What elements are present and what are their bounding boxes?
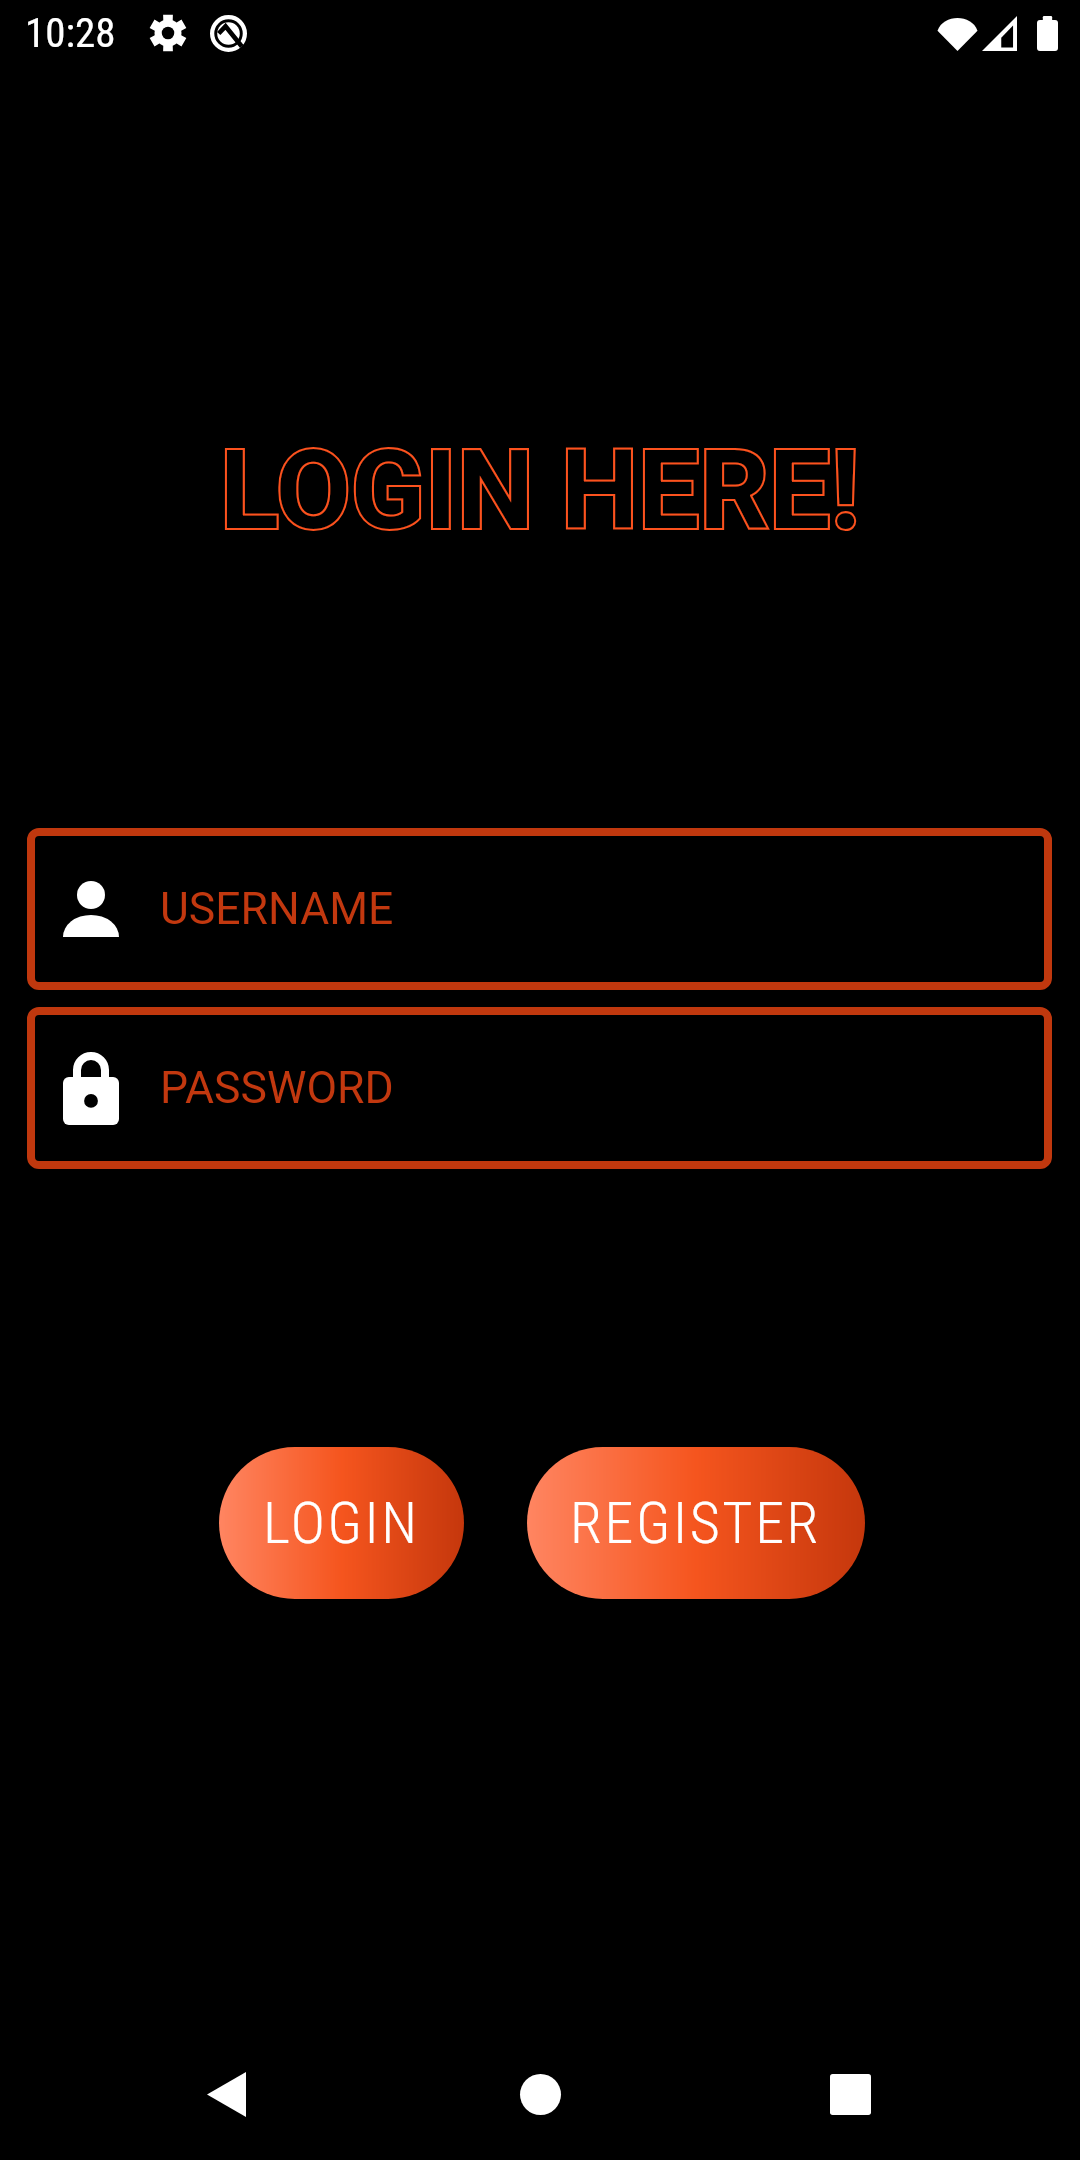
staticText: LOGIN — [263, 1489, 420, 1557]
button[interactable]: LOGIN — [219, 1447, 464, 1599]
staticText: LOGIN HERE! — [220, 427, 860, 555]
button[interactable]: REGISTER — [527, 1447, 865, 1599]
button[interactable]: Recent apps — [790, 2034, 910, 2154]
button[interactable]: PASSWORD — [27, 1007, 1052, 1169]
staticText: LOGIN HERE! — [220, 427, 860, 555]
staticText: USERNAME — [160, 883, 394, 935]
staticText: PASSWORD — [160, 1062, 394, 1114]
button[interactable]: Back — [166, 2034, 286, 2154]
staticText: REGISTER — [570, 1489, 822, 1557]
button[interactable]: USERNAME — [27, 828, 1052, 990]
button[interactable]: Home — [480, 2034, 600, 2154]
staticText: 10:28 — [25, 9, 116, 57]
